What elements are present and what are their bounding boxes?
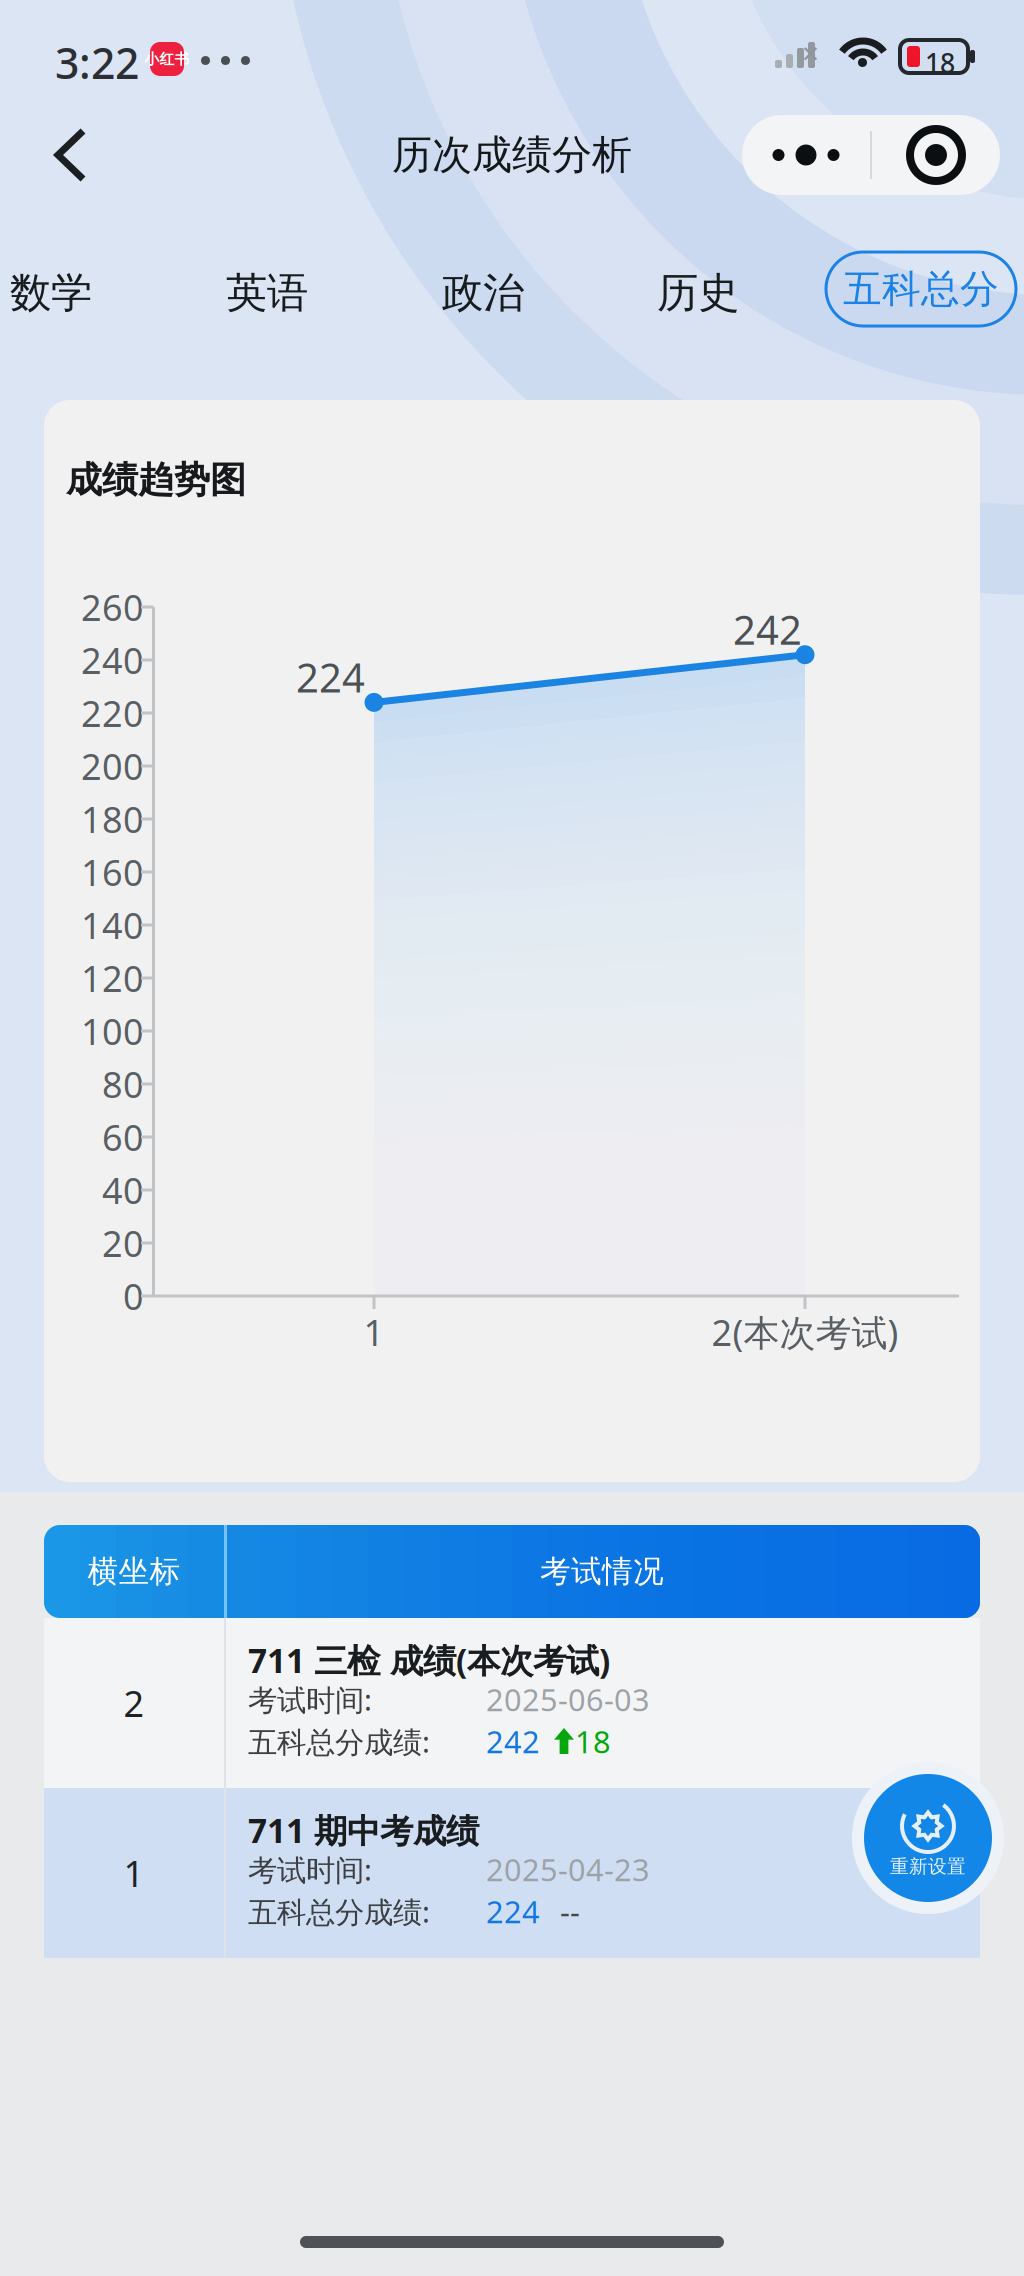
staticText: 3:22 (55, 34, 139, 91)
staticText: 260 (81, 583, 144, 631)
staticText: 224 (296, 650, 365, 703)
button[interactable]: 重新设置 (852, 1762, 1004, 1914)
staticText: 140 (81, 901, 144, 949)
staticText: 100 (81, 1007, 144, 1055)
staticText: 180 (81, 795, 144, 843)
staticText: 小红书 (144, 50, 189, 68)
button[interactable]: 英语 (226, 218, 346, 368)
staticText: 2025-06-03 (486, 1679, 650, 1720)
button[interactable]: More (742, 115, 870, 195)
staticText: 160 (81, 848, 144, 896)
staticText: ✕ (801, 41, 820, 67)
staticText: 0 (123, 1272, 144, 1320)
staticText: 220 (81, 689, 144, 737)
staticText: 2 (123, 1679, 144, 1727)
staticText: 242 (733, 603, 802, 656)
staticText: 政治 (442, 268, 524, 318)
staticText: 五科总分成绩: (248, 1722, 430, 1761)
staticText: 18 (925, 45, 955, 80)
button[interactable]: 数学 (10, 218, 130, 368)
staticText: 考试情况 (540, 1553, 664, 1590)
staticText: 考试时间: (248, 1850, 372, 1889)
staticText: 711 期中考成绩 (248, 1808, 479, 1852)
staticText: 80 (102, 1060, 144, 1108)
button[interactable]: Back (30, 106, 110, 204)
button[interactable]: Close (872, 115, 1000, 195)
staticText: 242 (486, 1721, 540, 1762)
staticText: 五科总分 (843, 265, 999, 313)
staticText: -- (560, 1891, 580, 1932)
staticText: 考试时间: (248, 1680, 372, 1719)
button[interactable]: 五科总分 (826, 252, 1016, 326)
staticText: 711 三检 成绩(本次考试) (248, 1638, 610, 1682)
staticText: 200 (81, 742, 144, 790)
staticText: 1 (363, 1308, 384, 1356)
staticText: 成绩趋势图 (66, 458, 246, 502)
staticText: 数学 (10, 268, 92, 318)
staticText: 2(本次考试) (711, 1308, 898, 1356)
staticText: 历次成绩分析 (392, 130, 632, 179)
staticText: 40 (102, 1166, 144, 1214)
staticText: 18 (575, 1721, 611, 1762)
staticText: 120 (81, 954, 144, 1002)
staticText: 240 (81, 636, 144, 684)
button[interactable]: 政治 (442, 218, 562, 368)
staticText: 横坐标 (87, 1553, 180, 1590)
button[interactable]: 历史 (657, 218, 777, 368)
staticText: 1 (123, 1849, 144, 1897)
staticText: 2025-04-23 (486, 1849, 650, 1890)
staticText: 224 (486, 1891, 540, 1932)
staticText: 60 (102, 1113, 144, 1161)
staticText: 历史 (657, 268, 739, 318)
staticText: 五科总分成绩: (248, 1892, 430, 1931)
staticText: 20 (102, 1219, 144, 1267)
staticText: 英语 (226, 268, 308, 318)
staticText: 重新设置 (890, 1855, 966, 1878)
